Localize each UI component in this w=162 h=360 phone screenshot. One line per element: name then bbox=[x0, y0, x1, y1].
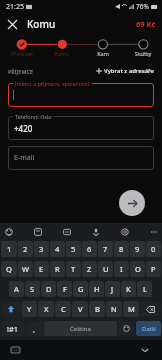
staticText: 21:25 bbox=[6, 2, 24, 12]
button[interactable]: Emoji klávesnice bbox=[118, 321, 135, 336]
button[interactable]: !#1 bbox=[1, 321, 25, 336]
staticText: 9 bbox=[135, 244, 140, 254]
staticText: Q bbox=[6, 264, 12, 274]
button[interactable] bbox=[0, 35, 162, 61]
button[interactable]: E bbox=[34, 261, 49, 277]
button[interactable] bbox=[0, 35, 162, 61]
staticText: Vybrat z adresáře bbox=[104, 67, 154, 75]
staticText: , bbox=[33, 324, 36, 334]
button[interactable]: E-mail bbox=[8, 146, 154, 170]
button[interactable]: X bbox=[38, 301, 54, 317]
button[interactable]: S bbox=[25, 281, 40, 297]
button[interactable] bbox=[0, 35, 162, 61]
staticText: W bbox=[22, 264, 29, 274]
staticText: Telefonní číslo bbox=[15, 113, 52, 120]
staticText: H bbox=[94, 284, 100, 294]
button[interactable]: I bbox=[114, 261, 129, 277]
button[interactable]: R bbox=[50, 261, 65, 277]
staticText: Služby bbox=[127, 50, 159, 57]
button[interactable]: 7 bbox=[98, 241, 113, 257]
staticText: Komu bbox=[27, 17, 56, 31]
staticText: 5 bbox=[71, 244, 76, 254]
button[interactable]: 1 bbox=[1, 241, 17, 257]
staticText: Y bbox=[27, 304, 32, 314]
staticText: 8 bbox=[119, 244, 124, 254]
staticText: Předmět bbox=[6, 50, 38, 57]
button[interactable]: 4 bbox=[50, 241, 65, 257]
staticText: 4 bbox=[55, 244, 60, 254]
button[interactable]: Emoji bbox=[3, 226, 14, 237]
button[interactable]: B bbox=[89, 301, 105, 317]
button[interactable]: Čeština bbox=[44, 321, 117, 336]
staticText: Z bbox=[87, 264, 92, 274]
staticText: !#1 bbox=[7, 324, 19, 334]
staticText: M bbox=[128, 304, 135, 314]
button[interactable] bbox=[0, 35, 162, 61]
staticText: S bbox=[30, 284, 35, 294]
button[interactable]: V bbox=[72, 301, 88, 317]
button[interactable]: , bbox=[26, 321, 43, 336]
staticText: Komu bbox=[46, 50, 78, 57]
button[interactable]: Skrýt klávesnici bbox=[138, 343, 152, 357]
staticText: 2 bbox=[23, 244, 28, 254]
button[interactable]: 3 bbox=[34, 241, 49, 257]
staticText: C bbox=[61, 304, 66, 314]
button[interactable]: G bbox=[73, 281, 88, 297]
staticText: V bbox=[78, 304, 83, 314]
button[interactable]: 5 bbox=[66, 241, 81, 257]
button[interactable]: 2 bbox=[18, 241, 33, 257]
button[interactable]: Y bbox=[22, 301, 37, 317]
button[interactable]: W bbox=[18, 261, 33, 277]
staticText: E bbox=[39, 264, 44, 274]
button[interactable]: Zavřít bbox=[2, 14, 22, 34]
staticText: J bbox=[111, 284, 114, 294]
button[interactable]: Vybrat z adresáře bbox=[96, 67, 154, 75]
staticText: K bbox=[126, 284, 131, 294]
button[interactable]: M bbox=[123, 301, 139, 317]
staticText: 6 bbox=[87, 244, 92, 254]
button[interactable]: C bbox=[55, 301, 71, 317]
button[interactable]: 0 bbox=[146, 241, 161, 257]
button[interactable]: Další bbox=[136, 321, 161, 336]
button[interactable]: 8 bbox=[114, 241, 129, 257]
button[interactable]: Schránka bbox=[61, 226, 72, 237]
button[interactable] bbox=[8, 83, 154, 107]
button[interactable]: F bbox=[57, 281, 72, 297]
button[interactable]: H bbox=[89, 281, 104, 297]
staticText: D bbox=[46, 284, 52, 294]
button[interactable]: Z bbox=[82, 261, 97, 277]
button[interactable]: Více bbox=[148, 226, 159, 237]
button[interactable]: P bbox=[146, 261, 161, 277]
button[interactable]: L bbox=[137, 281, 152, 297]
staticText: R bbox=[55, 264, 60, 274]
button[interactable]: U bbox=[98, 261, 113, 277]
staticText: 3 bbox=[39, 244, 44, 254]
button[interactable]: D bbox=[41, 281, 56, 297]
staticText: PŘÍJEMCE bbox=[8, 68, 34, 75]
button[interactable]: Nastavení bbox=[119, 226, 130, 237]
button[interactable]: +420 bbox=[8, 116, 154, 140]
staticText: B bbox=[95, 304, 100, 314]
button[interactable]: Q bbox=[1, 261, 17, 277]
button[interactable]: 9 bbox=[130, 241, 145, 257]
button[interactable]: J bbox=[105, 281, 120, 297]
button[interactable]: O bbox=[130, 261, 145, 277]
button[interactable]: 69 Kč bbox=[136, 19, 156, 29]
button[interactable]: Klávesnice bbox=[8, 343, 22, 357]
button[interactable]: GIF bbox=[32, 226, 43, 237]
staticText: Další bbox=[142, 325, 156, 333]
button[interactable]: A bbox=[9, 281, 24, 297]
staticText: E-mail bbox=[14, 153, 35, 163]
staticText: T bbox=[71, 264, 76, 274]
button[interactable]: K bbox=[121, 281, 136, 297]
button[interactable]: Shift bbox=[1, 301, 21, 317]
staticText: G bbox=[78, 284, 84, 294]
button[interactable]: 6 bbox=[82, 241, 97, 257]
button[interactable]: Mikrofon bbox=[90, 226, 101, 237]
staticText: 1 bbox=[7, 244, 12, 254]
button[interactable]: Smazat bbox=[140, 301, 161, 317]
button[interactable]: Pokračovat bbox=[119, 190, 145, 216]
staticText: 7 bbox=[103, 244, 108, 254]
button[interactable]: N bbox=[106, 301, 122, 317]
button[interactable]: T bbox=[66, 261, 81, 277]
